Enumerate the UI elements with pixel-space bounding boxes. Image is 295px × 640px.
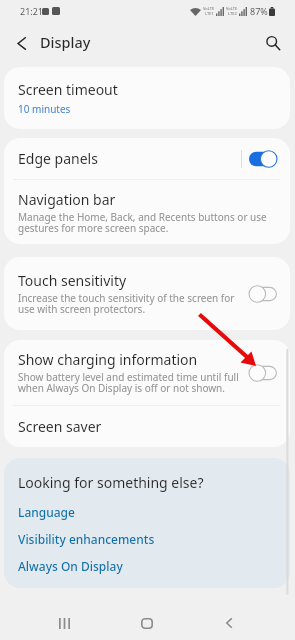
staticText: VoLTE — [226, 6, 238, 11]
staticText: 87% — [250, 5, 268, 17]
button[interactable]: Navigation bar — [4, 180, 290, 244]
button[interactable]: Always On Display — [18, 558, 123, 574]
staticText: Increase the touch sensitivity of the sc… — [18, 291, 235, 316]
button[interactable]: Language — [18, 504, 75, 520]
button[interactable]: Navigate up — [5, 27, 37, 59]
button[interactable]: Off — [247, 283, 279, 305]
button[interactable]: Off — [247, 362, 279, 384]
staticText: Touch sensitivity — [18, 271, 127, 290]
button[interactable]: Show charging information — [4, 340, 290, 405]
staticText: 10 minutes — [18, 102, 71, 116]
button[interactable]: Back — [209, 609, 249, 637]
button[interactable]: Touch sensitivity — [4, 257, 290, 330]
staticText: Edge panels — [18, 149, 98, 168]
staticText: VoLTE — [203, 6, 215, 11]
button[interactable]: On — [247, 148, 279, 170]
staticText: Screen timeout — [18, 80, 118, 99]
staticText: Manage the Home, Back, and Recents butto… — [18, 210, 267, 235]
button[interactable]: Screen saver — [4, 406, 290, 447]
staticText: Show battery level and estimated time un… — [18, 370, 239, 395]
button[interactable]: Visibility enhancements — [18, 531, 155, 547]
button[interactable]: Recents — [44, 609, 84, 637]
button[interactable]: Home — [127, 609, 167, 637]
button[interactable]: Edge panels — [4, 138, 290, 179]
staticText: 21:21 — [20, 5, 44, 17]
staticText: Show charging information — [18, 350, 198, 369]
staticText: Navigation bar — [18, 190, 116, 209]
staticText: Screen saver — [18, 417, 102, 436]
staticText: LTE2 — [228, 11, 237, 16]
staticText: LTE1 — [205, 11, 214, 16]
staticText: Display — [40, 32, 91, 52]
button[interactable]: Search — [257, 27, 289, 59]
staticText: Looking for something else? — [18, 473, 204, 492]
button[interactable]: Screen timeout — [4, 67, 290, 129]
